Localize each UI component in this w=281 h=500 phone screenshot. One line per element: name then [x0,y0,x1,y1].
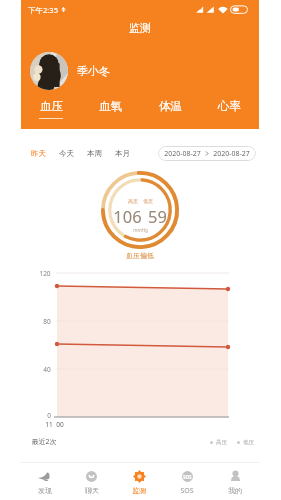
staticText: 本周 [87,149,102,158]
staticText: 季小冬 [77,64,110,78]
button[interactable]: 本月 [115,149,130,158]
staticText: 体温 [159,99,182,113]
button[interactable]: 体温 [148,99,192,119]
staticText: SOS [183,474,192,480]
staticText: mmHg [133,227,148,233]
staticText: 聊天 [85,486,99,495]
staticText: 血压 [40,99,63,113]
button[interactable]: 血压 [29,99,73,119]
staticText: 监测 [129,21,151,35]
staticText: 最近2次 [31,437,57,447]
staticText: 发现 [38,486,52,495]
staticText: 今天 [59,149,74,158]
staticText: 高压 [128,198,138,204]
staticText: 40 [43,365,51,374]
staticText: SOS [180,486,194,496]
staticText: 昨天 [31,149,46,158]
button[interactable]: 聊天 [68,463,115,495]
button[interactable]: 今天 [59,149,74,158]
button[interactable]: 监测 [115,463,163,495]
staticText: 106 [113,205,142,227]
staticText: 监测 [132,486,146,495]
staticText: 低压 [243,439,254,446]
staticText: 血氧 [99,99,122,113]
staticText: 80 [43,317,51,326]
staticText: 120 [39,269,51,278]
button[interactable]: 本周 [87,149,102,158]
button[interactable]: 我的 [211,463,259,495]
staticText: 2020-08-27 [213,149,250,159]
button[interactable]: 血氧 [88,99,132,119]
button[interactable]: 昨天 [31,149,46,158]
staticText: 00 [56,420,64,429]
staticText: 血压偏低 [126,251,154,260]
staticText: 心率 [218,99,241,113]
staticText: 59 [148,205,167,227]
staticText: 2020-08-27 [164,149,201,159]
button[interactable]: 发现 [21,463,68,495]
staticText: 下午2:35 [28,5,58,15]
staticText: 11 [45,420,53,429]
button[interactable]: 心率 [207,99,251,119]
staticText: 本月 [115,149,130,158]
staticText: 高压 [216,439,227,446]
button[interactable]: SOS [163,463,211,496]
staticText: 我的 [228,486,242,495]
button[interactable]: 2020-08-27 [158,146,256,161]
staticText: 低压 [143,198,153,204]
staticText: 0 [47,411,51,420]
